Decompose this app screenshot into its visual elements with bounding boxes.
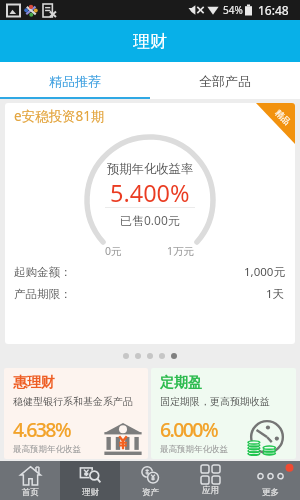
staticText: 最高预期年化收益 xyxy=(13,444,81,455)
staticText: 固定期限，更高预期收益 xyxy=(160,395,270,408)
staticText: 应用 xyxy=(202,485,219,496)
staticText: 起购金额： xyxy=(14,265,72,279)
staticText: 1天 xyxy=(266,286,285,302)
button[interactable]: e安稳投资81期 xyxy=(5,103,295,344)
button[interactable]: 资产 xyxy=(120,461,180,500)
button[interactable]: 理财 xyxy=(60,461,120,500)
staticText: 已售0.00元 xyxy=(120,212,180,228)
staticText: 1万元 xyxy=(167,244,195,258)
staticText: 首页 xyxy=(22,487,39,498)
staticText: 最高预期年化收益 xyxy=(160,444,228,455)
staticText: 稳健型银行系和基金系产品 xyxy=(13,395,133,408)
staticText: 54% xyxy=(223,3,243,17)
staticText: 16:48 xyxy=(258,2,289,18)
staticText: 预期年化收益率 xyxy=(107,161,194,176)
button[interactable]: 应用 xyxy=(180,461,240,500)
staticText: 精品推荐 xyxy=(49,73,101,89)
staticText: 4.638% xyxy=(13,416,70,443)
button[interactable]: 惠理财 xyxy=(4,368,148,459)
button[interactable]: 更多 xyxy=(240,461,300,500)
staticText: 5.400% xyxy=(110,177,190,209)
staticText: 1,000元 xyxy=(244,264,285,280)
button[interactable]: 全部产品 xyxy=(150,62,300,99)
staticText: 0元 xyxy=(105,244,122,258)
staticText: 理财 xyxy=(133,31,167,52)
staticText: 精品 xyxy=(273,108,292,127)
staticText: e安稳投资81期 xyxy=(14,107,105,125)
staticText: 6.000% xyxy=(160,416,217,443)
staticText: 惠理财 xyxy=(13,374,55,392)
button[interactable]: 定期盈 xyxy=(151,368,296,459)
staticText: 产品期限： xyxy=(14,287,72,301)
staticText: 全部产品 xyxy=(199,73,251,89)
button[interactable]: 精品推荐 xyxy=(0,62,150,99)
other: 更多 xyxy=(260,465,281,486)
staticText: 更多 xyxy=(262,487,279,498)
staticText: 资产 xyxy=(142,487,159,498)
staticText: 理财 xyxy=(82,487,99,498)
staticText: 定期盈 xyxy=(160,374,202,392)
button[interactable]: 首页 xyxy=(0,461,60,500)
